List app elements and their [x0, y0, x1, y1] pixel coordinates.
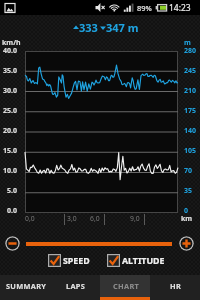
button[interactable]: SPEED — [48, 254, 90, 267]
button[interactable]: CHART — [100, 275, 150, 300]
staticText: LAPS — [66, 281, 86, 291]
staticText: 35 — [184, 186, 200, 196]
staticText: 245 — [184, 66, 200, 76]
staticText: m — [184, 38, 191, 48]
staticText: km/h — [2, 38, 21, 48]
staticText: HR — [170, 281, 182, 291]
staticText: 333 — [79, 20, 98, 35]
staticText: SUMMARY — [6, 281, 47, 291]
staticText: 30.0 — [0, 86, 17, 96]
staticText: 14:23 — [169, 2, 191, 14]
button[interactable]: HR — [150, 275, 200, 300]
staticText: 175 — [184, 106, 200, 116]
staticText: 35.0 — [0, 66, 17, 76]
staticText: 0,0 — [25, 214, 35, 223]
staticText: 0 — [184, 206, 200, 216]
staticText: 25.0 — [0, 106, 17, 116]
staticText: 89% — [137, 3, 152, 13]
staticText: 6,0 — [90, 214, 100, 223]
staticText: 105 — [184, 146, 200, 156]
staticText: 3,0 — [67, 214, 77, 223]
staticText: CHART — [113, 281, 140, 291]
staticText: 210 — [184, 86, 200, 96]
button[interactable]: SUMMARY — [0, 275, 50, 300]
staticText: 70 — [184, 166, 200, 176]
staticText: 5.0 — [0, 186, 17, 196]
staticText: 9,0 — [130, 214, 140, 223]
staticText: 347 m — [106, 20, 139, 35]
button[interactable]: ALTITUDE — [107, 254, 165, 267]
staticText: km — [181, 214, 193, 224]
staticText: 0.0 — [0, 206, 17, 216]
staticText: 40.0 — [0, 46, 17, 56]
staticText: SPEED — [63, 255, 90, 267]
staticText: 280 — [184, 46, 200, 56]
button[interactable]: Zoom in — [179, 236, 194, 251]
staticText: 140 — [184, 126, 200, 136]
staticText: 20.0 — [0, 126, 17, 136]
button[interactable]: LAPS — [50, 275, 100, 300]
button[interactable]: Zoom out — [5, 236, 20, 251]
staticText: 15.0 — [0, 146, 17, 156]
staticText: 10.0 — [0, 166, 17, 176]
staticText: ALTITUDE — [122, 255, 165, 267]
